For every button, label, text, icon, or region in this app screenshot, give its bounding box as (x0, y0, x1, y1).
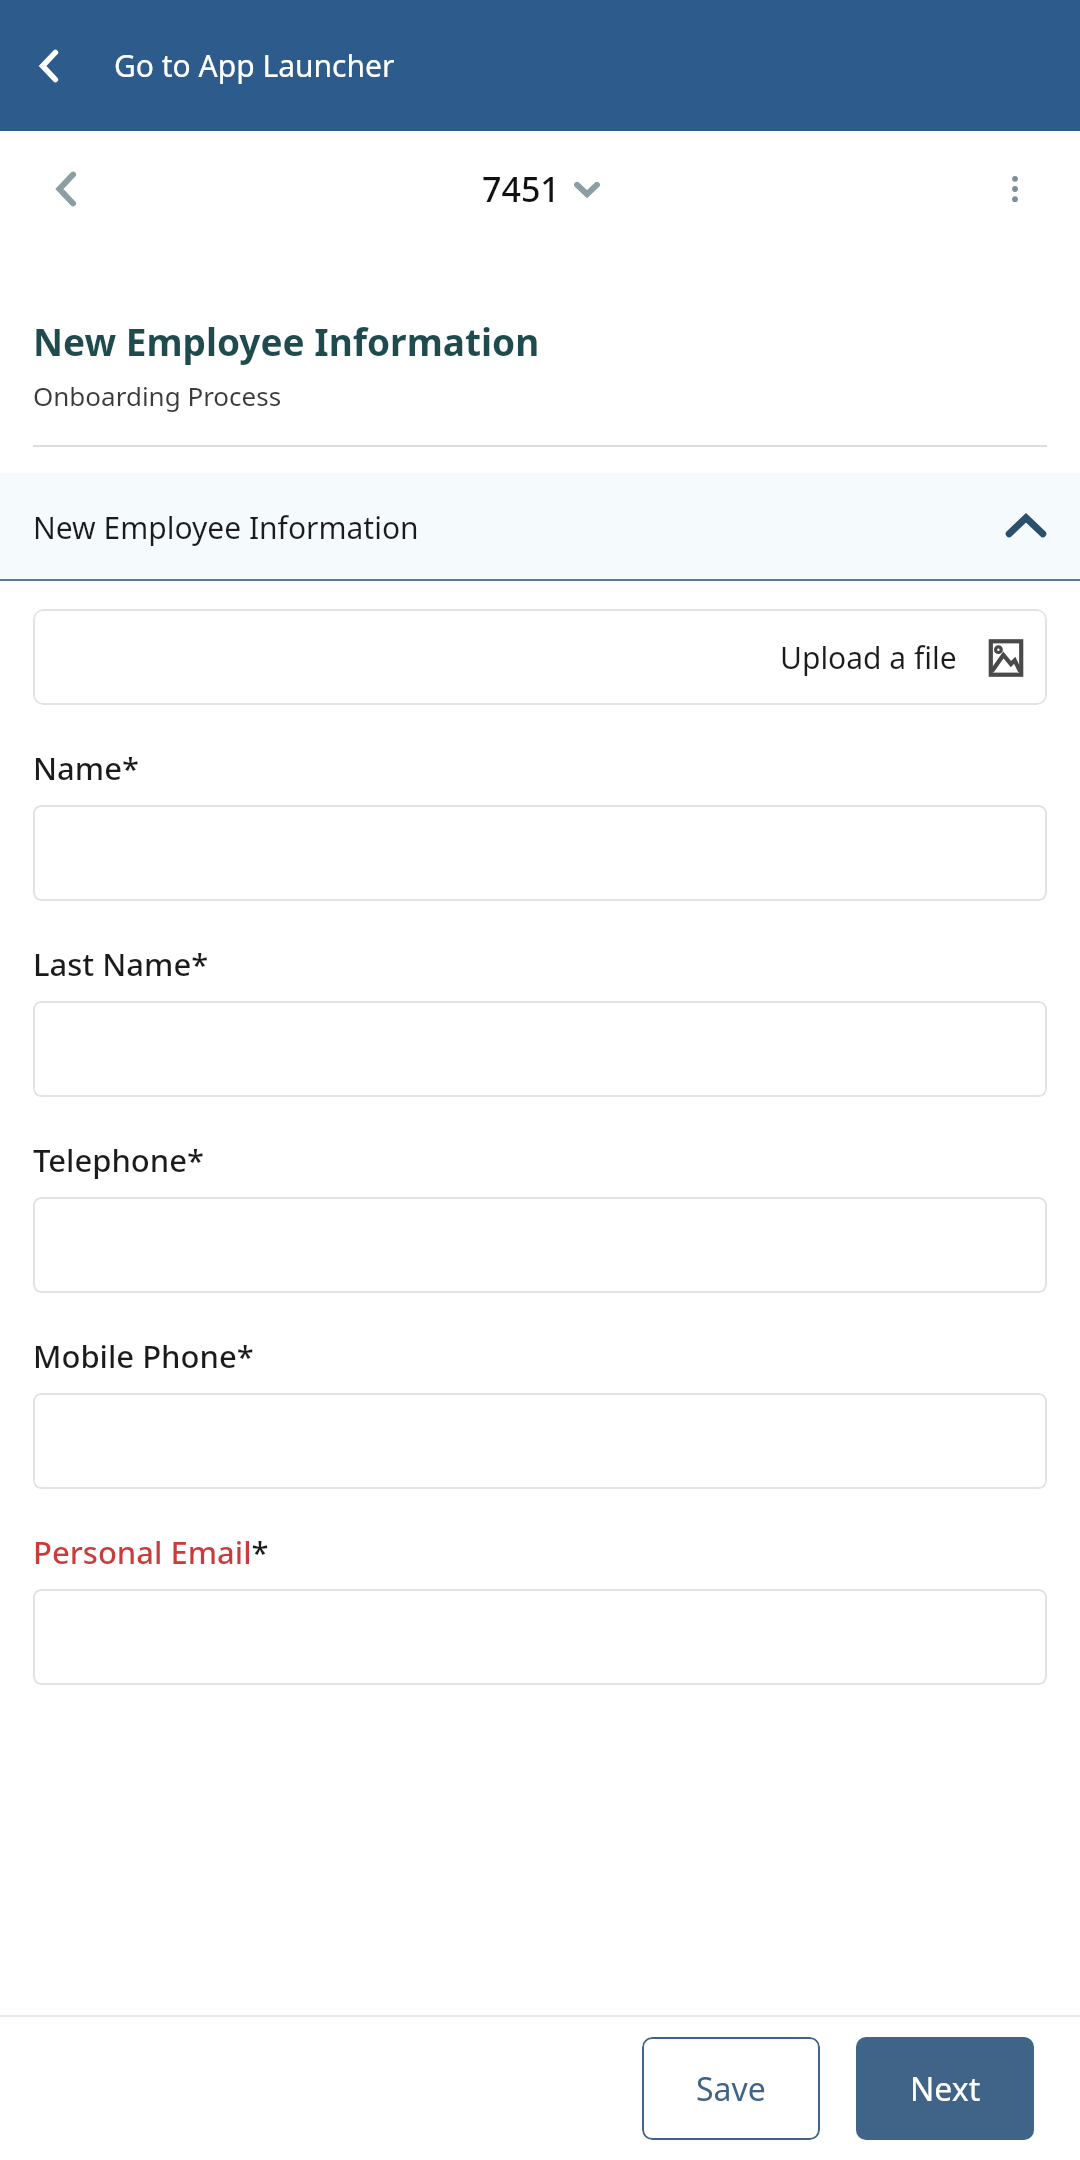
staticText: Name* (33, 747, 139, 789)
button[interactable] (33, 1393, 1047, 1489)
button[interactable]: More options (978, 152, 1052, 226)
button[interactable]: New Employee Information (0, 473, 1080, 581)
staticText: Save (696, 2067, 766, 2111)
button[interactable]: Save (642, 2037, 820, 2140)
button[interactable]: Upload a file (33, 609, 1047, 705)
staticText: Next (910, 2067, 981, 2111)
staticText: 7451 (482, 166, 560, 212)
button[interactable]: Previous (30, 152, 104, 226)
other: Upload image (987, 639, 1025, 677)
button[interactable] (33, 1001, 1047, 1097)
staticText: New Employee Information (33, 507, 419, 548)
button[interactable]: 7451 (482, 166, 600, 212)
button[interactable] (33, 805, 1047, 901)
staticText: Upload a file (780, 637, 957, 678)
button[interactable]: Back (22, 38, 78, 94)
staticText: Onboarding Process (33, 378, 282, 413)
staticText: Mobile Phone* (33, 1335, 254, 1377)
staticText: Last Name* (33, 943, 209, 985)
staticText: Go to App Launcher (114, 45, 395, 86)
staticText: Personal Email* (33, 1531, 269, 1573)
staticText: New Employee Information (33, 316, 540, 366)
staticText: Telephone* (33, 1139, 205, 1181)
button[interactable]: Next (856, 2037, 1034, 2140)
button[interactable] (33, 1197, 1047, 1293)
button[interactable] (33, 1589, 1047, 1685)
